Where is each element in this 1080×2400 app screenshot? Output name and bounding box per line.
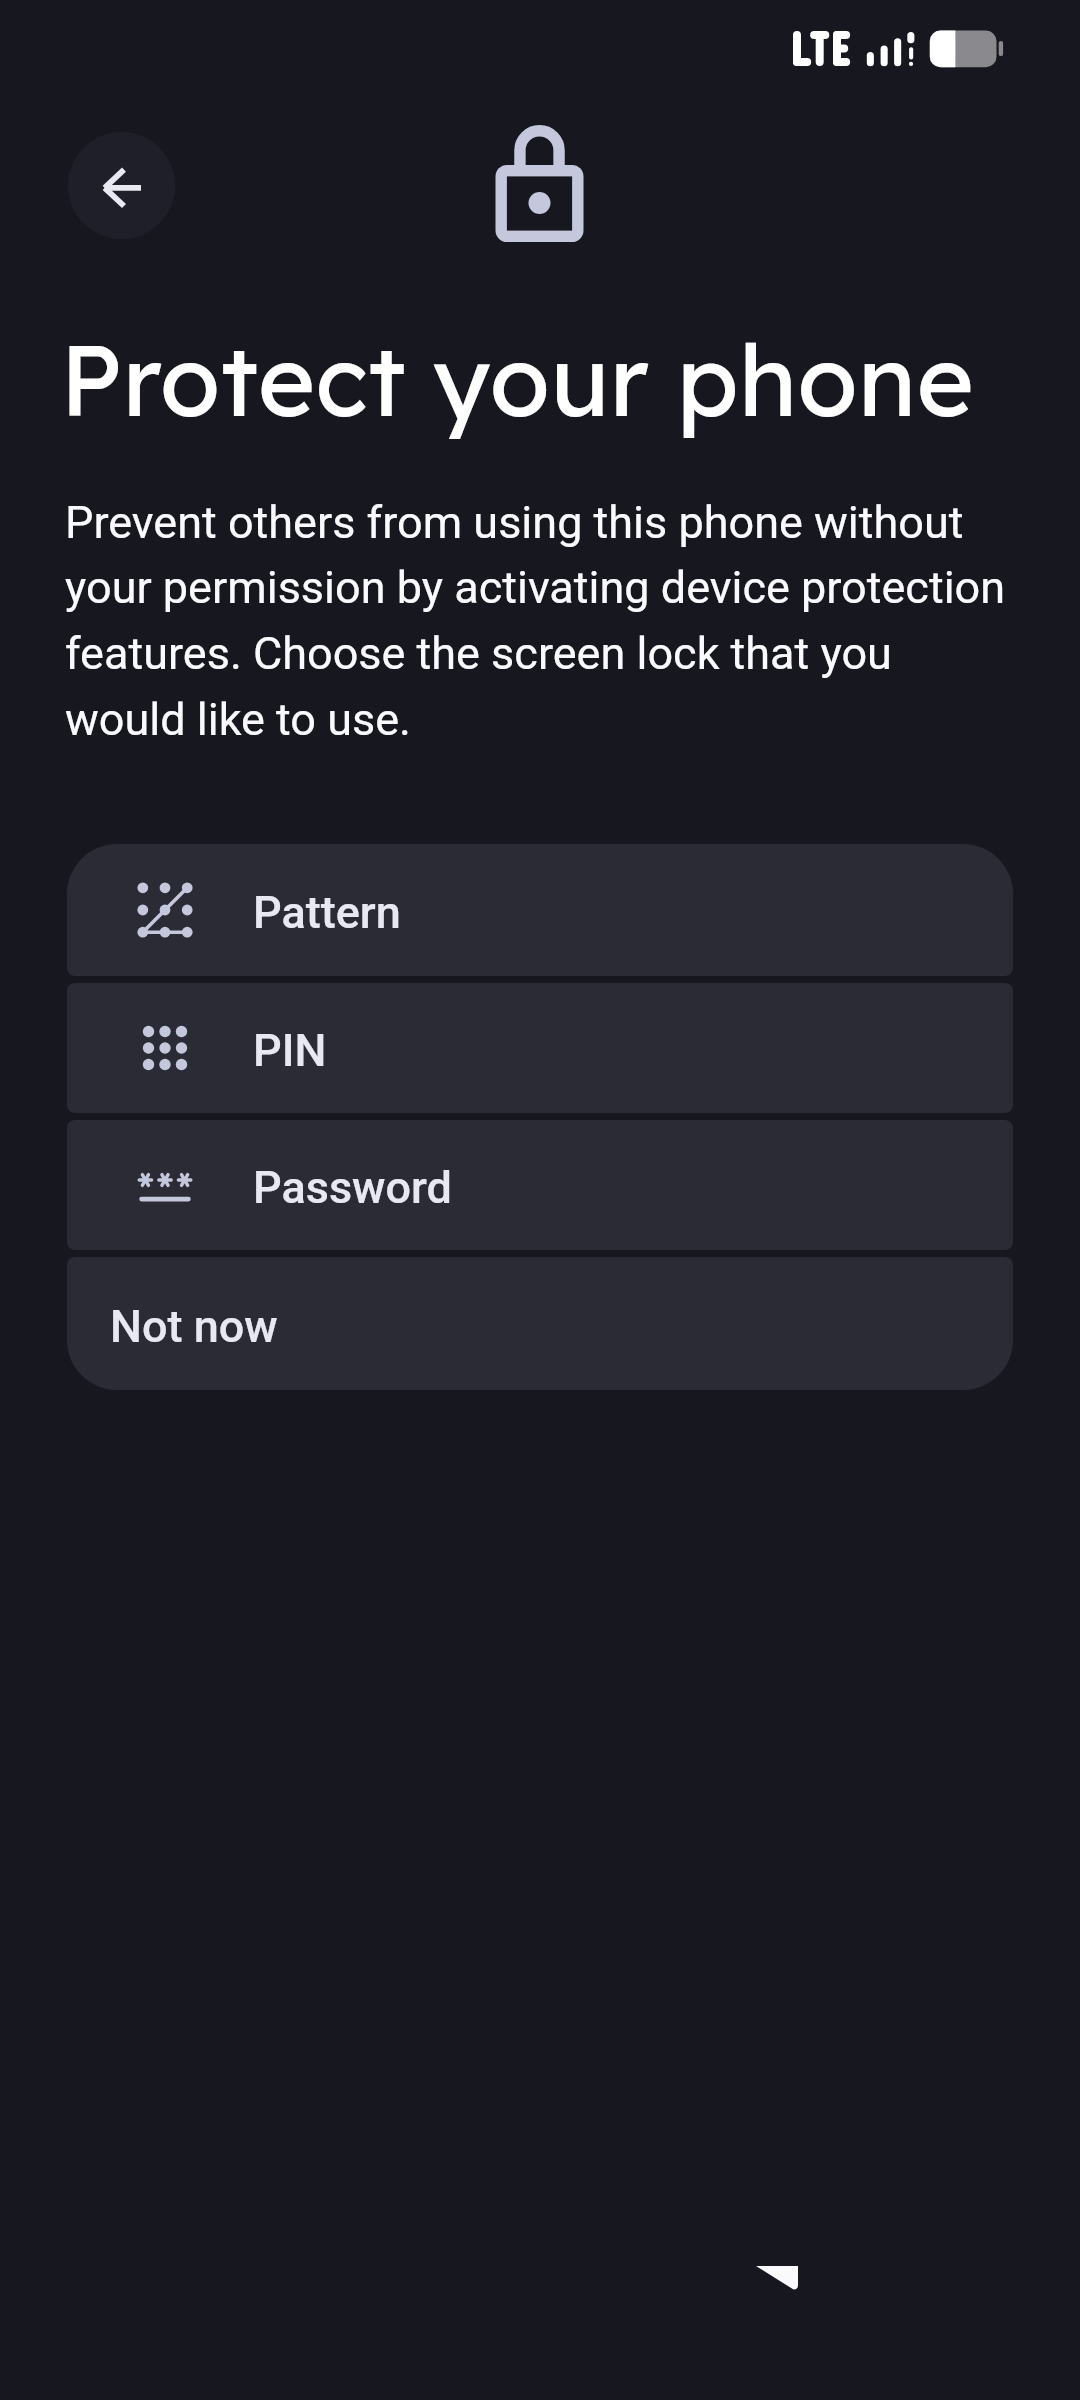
staticText: PIN — [253, 1024, 327, 1077]
staticText: Prevent others from using this phone wit… — [65, 496, 1018, 746]
button[interactable]: PIN — [67, 983, 1013, 1113]
staticText: Protect your phone — [60, 318, 975, 441]
staticText: Pattern — [253, 886, 401, 939]
staticText: Password — [253, 1161, 452, 1214]
button[interactable]: Not now — [67, 1257, 1013, 1390]
staticText: Not now — [110, 1300, 278, 1353]
button[interactable]: Password — [67, 1120, 1013, 1250]
button[interactable]: Back — [68, 132, 175, 239]
button[interactable]: Pattern — [67, 844, 1013, 976]
